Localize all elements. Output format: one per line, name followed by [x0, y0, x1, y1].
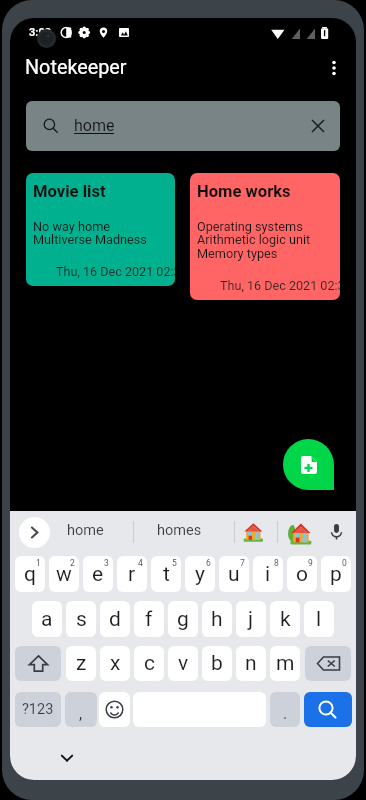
button[interactable]: h	[202, 601, 232, 637]
button[interactable]: i	[253, 556, 283, 592]
button[interactable]: ?123	[15, 692, 61, 727]
staticText: f	[145, 607, 153, 632]
staticText: p	[330, 562, 342, 587]
staticText: 6	[206, 558, 211, 568]
staticText: g	[177, 607, 189, 632]
staticText: 9	[308, 558, 313, 568]
staticText: d	[109, 607, 121, 632]
staticText: 5	[172, 558, 177, 568]
button[interactable]: Movie list	[26, 173, 175, 286]
button[interactable]: a	[32, 601, 62, 637]
button[interactable]: homes	[157, 522, 202, 539]
staticText: Memory types	[197, 246, 278, 261]
staticText: Multiverse Madness	[33, 232, 147, 247]
staticText: o	[296, 562, 308, 587]
staticText: Thu, 16 Dec 2021 02:34	[220, 278, 340, 293]
staticText: 0	[342, 558, 347, 568]
button[interactable]: p	[321, 556, 351, 592]
staticText: 4	[138, 558, 143, 568]
staticText: Arithmetic logic unit	[197, 232, 311, 247]
staticText: t	[163, 562, 170, 587]
staticText: Operating systems	[197, 219, 303, 234]
staticText: a	[41, 607, 53, 632]
staticText: 2	[70, 558, 75, 568]
button[interactable]: home	[67, 522, 104, 539]
staticText: q	[24, 562, 36, 587]
button[interactable]: Home works	[190, 173, 340, 300]
button[interactable]: o	[287, 556, 317, 592]
staticText: ,	[79, 704, 83, 723]
staticText: r	[128, 562, 136, 587]
button[interactable]: q	[15, 556, 45, 592]
button[interactable]: y	[185, 556, 215, 592]
button[interactable]: Voice input	[322, 517, 350, 545]
button[interactable]: z	[66, 646, 96, 681]
button[interactable]: k	[270, 601, 300, 637]
staticText: 3:02	[29, 26, 52, 39]
staticText: 3	[104, 558, 109, 568]
button[interactable]: n	[236, 646, 266, 681]
button[interactable]: Expand suggestions	[19, 517, 50, 548]
staticText: z	[76, 651, 87, 676]
button[interactable]: More options	[318, 52, 350, 84]
button[interactable]: b	[202, 646, 232, 681]
button[interactable]: Search	[304, 692, 352, 727]
button[interactable]: Hide keyboard	[52, 743, 82, 773]
button[interactable]: t	[151, 556, 181, 592]
staticText: j	[248, 607, 254, 632]
staticText: u	[228, 562, 240, 587]
button[interactable]: ,	[65, 692, 97, 727]
staticText: No way home	[33, 219, 111, 234]
staticText: 8	[274, 558, 279, 568]
staticText: w	[56, 562, 72, 587]
staticText: e	[92, 562, 104, 587]
staticText: c	[144, 651, 155, 676]
button[interactable]: l	[304, 601, 334, 637]
staticText: x	[110, 651, 121, 676]
button[interactable]: w	[49, 556, 79, 592]
button[interactable]: Backspace	[305, 646, 351, 681]
button[interactable]: .	[270, 692, 300, 727]
staticText: Home works	[197, 182, 291, 201]
button[interactable]: c	[134, 646, 164, 681]
button[interactable]: f	[134, 601, 164, 637]
button[interactable]: j	[236, 601, 266, 637]
button[interactable]: u	[219, 556, 249, 592]
staticText: Movie list	[33, 182, 106, 201]
staticText: Thu, 16 Dec 2021 02:34	[56, 264, 175, 279]
button[interactable]: r	[117, 556, 147, 592]
staticText: ?123	[22, 701, 54, 718]
staticText: 7	[240, 558, 245, 568]
staticText: s	[76, 607, 87, 632]
staticText: k	[280, 607, 291, 632]
staticText: n	[245, 651, 257, 676]
button[interactable]: m	[270, 646, 300, 681]
staticText: i	[265, 562, 271, 587]
button[interactable]: House emoji	[243, 521, 266, 544]
button[interactable]: g	[168, 601, 198, 637]
button[interactable]: Emoji	[99, 692, 130, 727]
button[interactable]: New note	[283, 439, 334, 490]
staticText: .	[283, 704, 288, 723]
staticText: Notekeeper	[25, 56, 127, 79]
staticText: m	[276, 651, 295, 676]
button[interactable]: v	[168, 646, 198, 681]
button[interactable]: d	[100, 601, 130, 637]
staticText: home	[74, 116, 115, 135]
staticText: l	[316, 607, 322, 632]
staticText: y	[195, 562, 205, 587]
button[interactable]: e	[83, 556, 113, 592]
button[interactable]: home	[26, 101, 340, 151]
button[interactable]: House emoji	[285, 521, 311, 547]
button[interactable]: Shift	[15, 646, 61, 681]
button[interactable]: x	[100, 646, 130, 681]
staticText: h	[211, 607, 223, 632]
staticText: b	[211, 651, 223, 676]
staticText: 1	[36, 558, 41, 568]
button[interactable]: s	[66, 601, 96, 637]
button[interactable]: Clear search	[296, 101, 340, 151]
staticText: v	[178, 651, 189, 676]
